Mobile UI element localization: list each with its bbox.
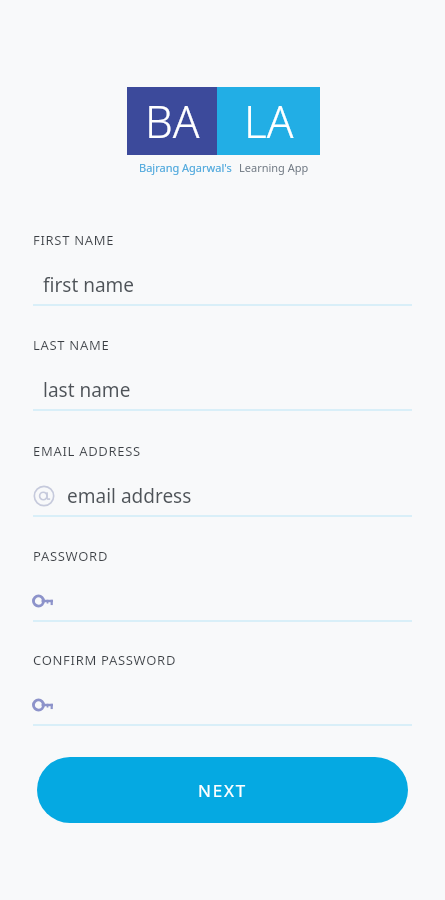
staticText: EMAIL ADDRESS (33, 442, 141, 460)
other: Password (33, 590, 55, 612)
button[interactable]: NEXT (37, 757, 408, 823)
staticText: PASSWORD (33, 547, 109, 565)
other: Email (33, 485, 55, 507)
staticText: NEXT (198, 779, 247, 802)
staticText: BA (145, 91, 200, 151)
staticText: last name (43, 377, 131, 403)
staticText: Learning App (239, 160, 309, 175)
other: Password (33, 694, 55, 716)
staticText: LA (244, 91, 294, 151)
staticText: first name (43, 272, 135, 298)
staticText: Bajrang Agarwal's (139, 160, 232, 175)
button[interactable]: first name (33, 265, 412, 305)
button[interactable]: last name (33, 370, 412, 410)
staticText: email address (67, 483, 192, 509)
staticText: LAST NAME (33, 336, 110, 354)
staticText: FIRST NAME (33, 231, 115, 249)
button[interactable]: Email (33, 476, 412, 516)
staticText: CONFIRM PASSWORD (33, 651, 177, 669)
button[interactable]: Password (33, 685, 412, 725)
button[interactable]: Password (33, 581, 412, 621)
